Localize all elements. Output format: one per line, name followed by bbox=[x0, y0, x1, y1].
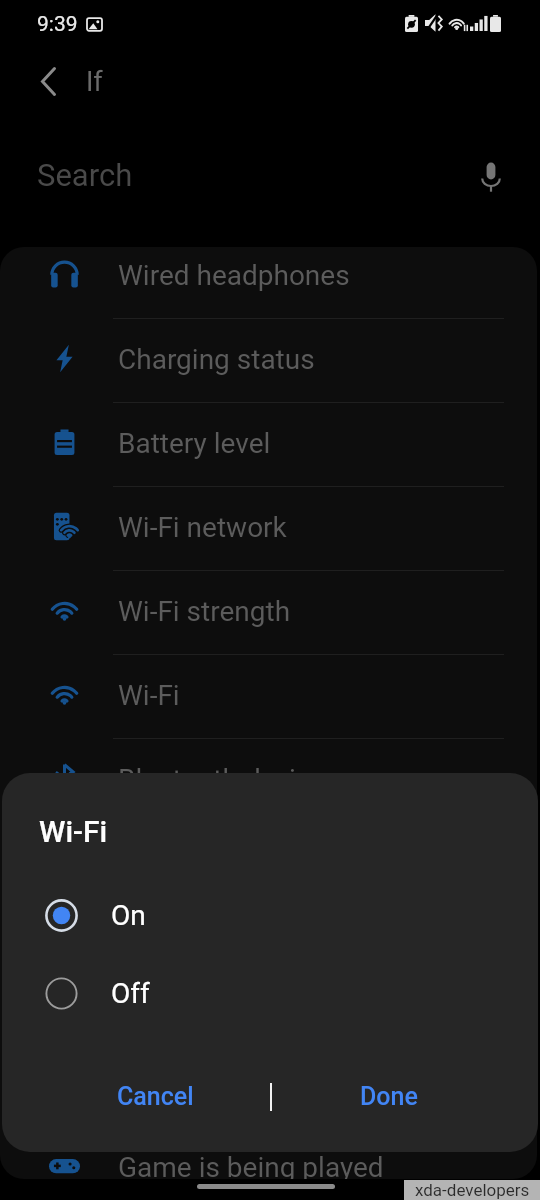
staticText: Wired headphones bbox=[118, 259, 350, 292]
button[interactable]: Voice search bbox=[469, 155, 513, 199]
button[interactable]: Bluetooth device bbox=[0, 738, 537, 822]
staticText: Game is being played bbox=[118, 1151, 384, 1179]
staticText: Wi-Fi bbox=[39, 814, 108, 849]
staticText: If bbox=[86, 66, 103, 98]
button[interactable]: Screen state bbox=[0, 990, 537, 1074]
button[interactable]: Bluetooth audio bbox=[0, 906, 537, 990]
button[interactable]: Bluetooth bbox=[0, 822, 537, 906]
button[interactable]: Wi-Fi network bbox=[0, 486, 537, 570]
button[interactable]: Back bbox=[24, 57, 72, 105]
button[interactable]: Done bbox=[321, 1066, 457, 1126]
staticText: Music is playing bbox=[118, 1099, 318, 1132]
staticText: On bbox=[111, 899, 146, 932]
button[interactable]: Off bbox=[2, 961, 538, 1025]
staticText: Search bbox=[37, 157, 133, 193]
staticText: xda-developers bbox=[415, 1180, 530, 1200]
staticText: Off bbox=[111, 977, 150, 1010]
button[interactable]: Wi-Fi strength bbox=[0, 570, 537, 654]
button[interactable]: Wi-Fi bbox=[0, 654, 537, 738]
staticText: Done bbox=[360, 1082, 418, 1111]
button[interactable]: On bbox=[2, 883, 538, 947]
button[interactable]: Cancel bbox=[75, 1066, 235, 1126]
button[interactable]: Wired headphones bbox=[0, 247, 537, 318]
staticText: 9:39 bbox=[37, 12, 78, 37]
staticText: Cancel bbox=[117, 1082, 194, 1111]
staticText: Wi-Fi strength bbox=[118, 595, 291, 628]
staticText: Wi-Fi bbox=[118, 679, 180, 712]
staticText: Charging status bbox=[118, 343, 315, 376]
button[interactable]: Game is being played bbox=[0, 1126, 537, 1179]
staticText: Battery level bbox=[118, 427, 271, 460]
staticText: Wi-Fi network bbox=[118, 511, 287, 544]
button[interactable]: Charging status bbox=[0, 318, 537, 402]
button[interactable]: Battery level bbox=[0, 402, 537, 486]
staticText: Bluetooth device bbox=[118, 763, 326, 796]
button[interactable]: Music is playing bbox=[0, 1074, 537, 1158]
